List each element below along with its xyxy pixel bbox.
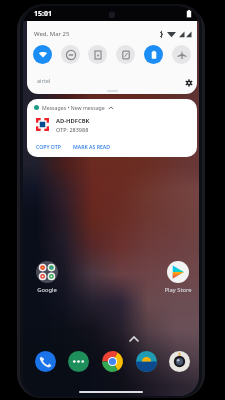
button[interactable]: Quick setting <box>88 45 107 64</box>
button[interactable]: Play Store <box>156 261 199 294</box>
button[interactable]: Phone <box>35 351 56 372</box>
staticText: MARK AS READ <box>73 143 111 150</box>
staticText: COPY OTP <box>36 143 61 150</box>
button[interactable]: Chrome <box>102 351 123 372</box>
button[interactable]: Quick setting <box>116 45 135 64</box>
button[interactable]: Google <box>25 261 69 294</box>
staticText: 15:01 <box>34 9 52 19</box>
button[interactable]: Photos <box>136 351 157 372</box>
staticText: Wed, Mar 25 <box>34 30 70 38</box>
staticText: Messages • New message <box>42 104 105 111</box>
staticText: OTP: 283988 <box>56 126 89 133</box>
button[interactable]: Quick setting <box>61 45 80 64</box>
button[interactable]: COPY OTP <box>36 143 61 150</box>
button[interactable]: Settings <box>182 76 196 90</box>
button[interactable]: Quick setting <box>33 45 52 64</box>
button[interactable]: MARK AS READ <box>73 143 111 150</box>
staticText: Play Store <box>164 286 192 294</box>
button[interactable]: Messages • New message <box>27 99 197 157</box>
staticText: AD-HDFCBK <box>56 117 90 125</box>
staticText: Google <box>37 286 57 294</box>
button[interactable]: Open app drawer <box>126 331 142 347</box>
button[interactable]: Messages <box>68 351 89 372</box>
button[interactable]: Quick setting <box>144 45 163 64</box>
button[interactable]: Camera <box>169 351 190 372</box>
staticText: airtel <box>37 77 51 84</box>
button[interactable]: Quick setting <box>172 45 191 64</box>
